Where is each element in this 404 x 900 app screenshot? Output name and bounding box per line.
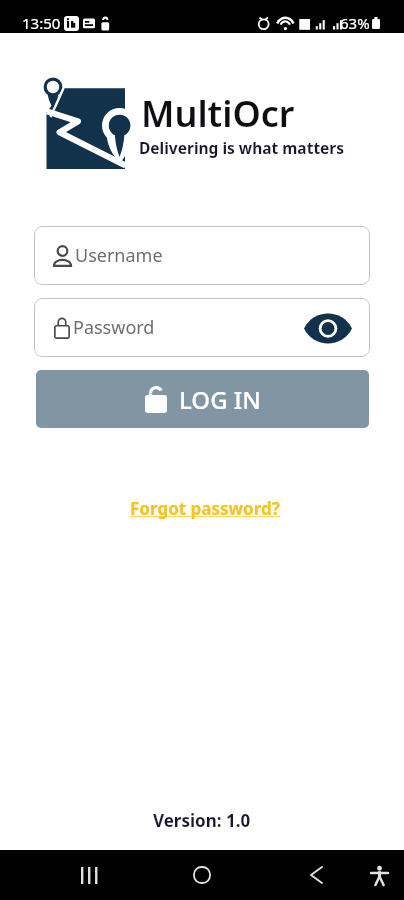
staticText: LOG IN — [179, 383, 261, 416]
button[interactable]: Accessibility — [354, 850, 404, 900]
button[interactable]: Recent apps — [59, 850, 119, 900]
button[interactable]: Forgot password? — [122, 493, 288, 524]
staticText: Forgot password? — [130, 497, 280, 520]
button[interactable]: Show password — [301, 306, 355, 350]
button[interactable]: Home — [172, 850, 232, 900]
button[interactable]: Back — [286, 850, 346, 900]
staticText: Version: 1.0 — [153, 809, 251, 832]
staticText: 63% — [340, 13, 370, 33]
staticText: MultiOcr — [141, 89, 295, 138]
staticText: Username — [75, 243, 163, 268]
staticText: Delivering is what matters — [139, 137, 345, 158]
staticText: Password — [73, 315, 155, 340]
button[interactable]: LOG IN — [36, 370, 369, 428]
button[interactable]: Password — [34, 298, 370, 357]
button[interactable]: Username — [34, 226, 370, 285]
staticText: 13:50 — [22, 13, 61, 33]
